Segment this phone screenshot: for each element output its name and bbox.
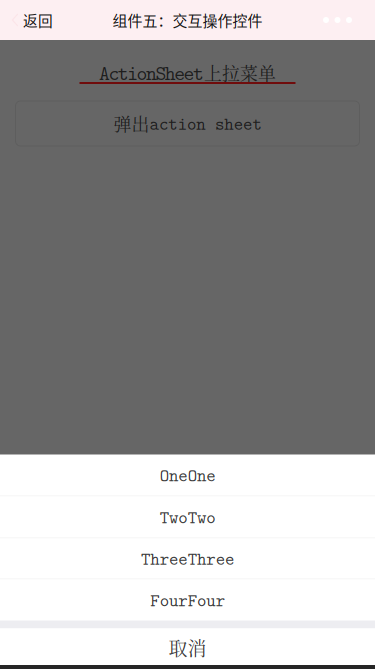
button[interactable]: 取消 (0, 628, 375, 666)
staticText: 组件五：交互操作控件 (112, 9, 262, 31)
button[interactable]: FourFour (0, 579, 375, 620)
staticText: 取消 (168, 634, 206, 661)
staticText: TwoTwo (160, 505, 215, 529)
staticText: OneOne (160, 463, 215, 487)
staticText: 弹出 (114, 111, 150, 136)
button[interactable]: 返回 (0, 0, 65, 40)
staticText: 返回 (23, 9, 53, 31)
staticText: ThreeThree (141, 546, 234, 570)
staticText: action sheet (150, 111, 261, 135)
staticText: ActionSheet (99, 59, 204, 86)
button[interactable]: ThreeThree (0, 538, 375, 578)
button[interactable]: OneOne (0, 454, 375, 495)
staticText: FourFour (150, 588, 225, 612)
button[interactable]: 弹出 (15, 101, 359, 146)
staticText: 上拉菜单 (204, 60, 276, 86)
button[interactable]: TwoTwo (0, 496, 375, 537)
